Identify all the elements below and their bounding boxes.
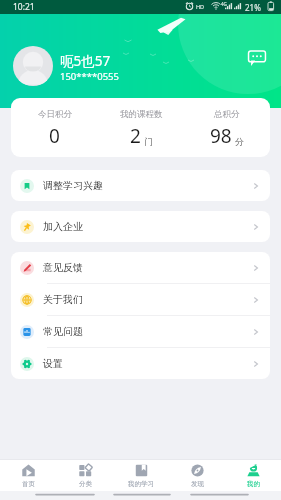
staticText: 关于我们	[43, 293, 83, 306]
button[interactable]: Messages	[248, 51, 266, 66]
button[interactable]: 关于我们	[11, 284, 270, 315]
staticText: 分	[235, 136, 244, 147]
staticText: 门	[144, 136, 153, 147]
button[interactable]: 加入企业	[11, 211, 270, 242]
staticText: HD	[196, 3, 205, 10]
staticText: 我的	[247, 480, 260, 488]
staticText: 21%	[245, 2, 261, 13]
staticText: 150****0555	[60, 70, 119, 83]
staticText: 0	[49, 123, 60, 149]
staticText: 4G	[221, 1, 227, 7]
button[interactable]: 设置	[11, 348, 270, 379]
staticText: 今日积分	[38, 109, 72, 120]
staticText: 常见问题	[43, 325, 83, 338]
staticText: 分类	[79, 480, 92, 488]
staticText: 我的课程数	[120, 109, 163, 120]
button[interactable]: 发现	[169, 460, 225, 491]
staticText: 意见反馈	[43, 261, 83, 274]
staticText: 总积分	[214, 109, 240, 120]
staticText: 我的学习	[128, 480, 154, 488]
button[interactable]: 我的	[225, 460, 281, 491]
button[interactable]: 常见问题	[11, 316, 270, 347]
button[interactable]: 总积分	[184, 109, 270, 149]
staticText: 设置	[43, 357, 63, 370]
button[interactable]: 分类	[57, 460, 113, 491]
button[interactable]: 今日积分	[11, 109, 98, 149]
staticText: 调整学习兴趣	[43, 179, 103, 192]
staticText: 首页	[22, 480, 35, 488]
staticText: 98	[210, 123, 232, 149]
staticText: 呃5也57	[60, 52, 111, 70]
button[interactable]: 调整学习兴趣	[11, 170, 270, 201]
staticText: 2	[130, 123, 141, 149]
button[interactable]: 我的学习	[113, 460, 169, 491]
button[interactable]: 意见反馈	[11, 252, 270, 283]
staticText: 10:21	[13, 1, 35, 13]
staticText: 发现	[191, 480, 204, 488]
button[interactable]: 首页	[0, 460, 57, 491]
button[interactable]: 我的课程数	[98, 109, 184, 149]
staticText: 加入企业	[43, 220, 83, 233]
